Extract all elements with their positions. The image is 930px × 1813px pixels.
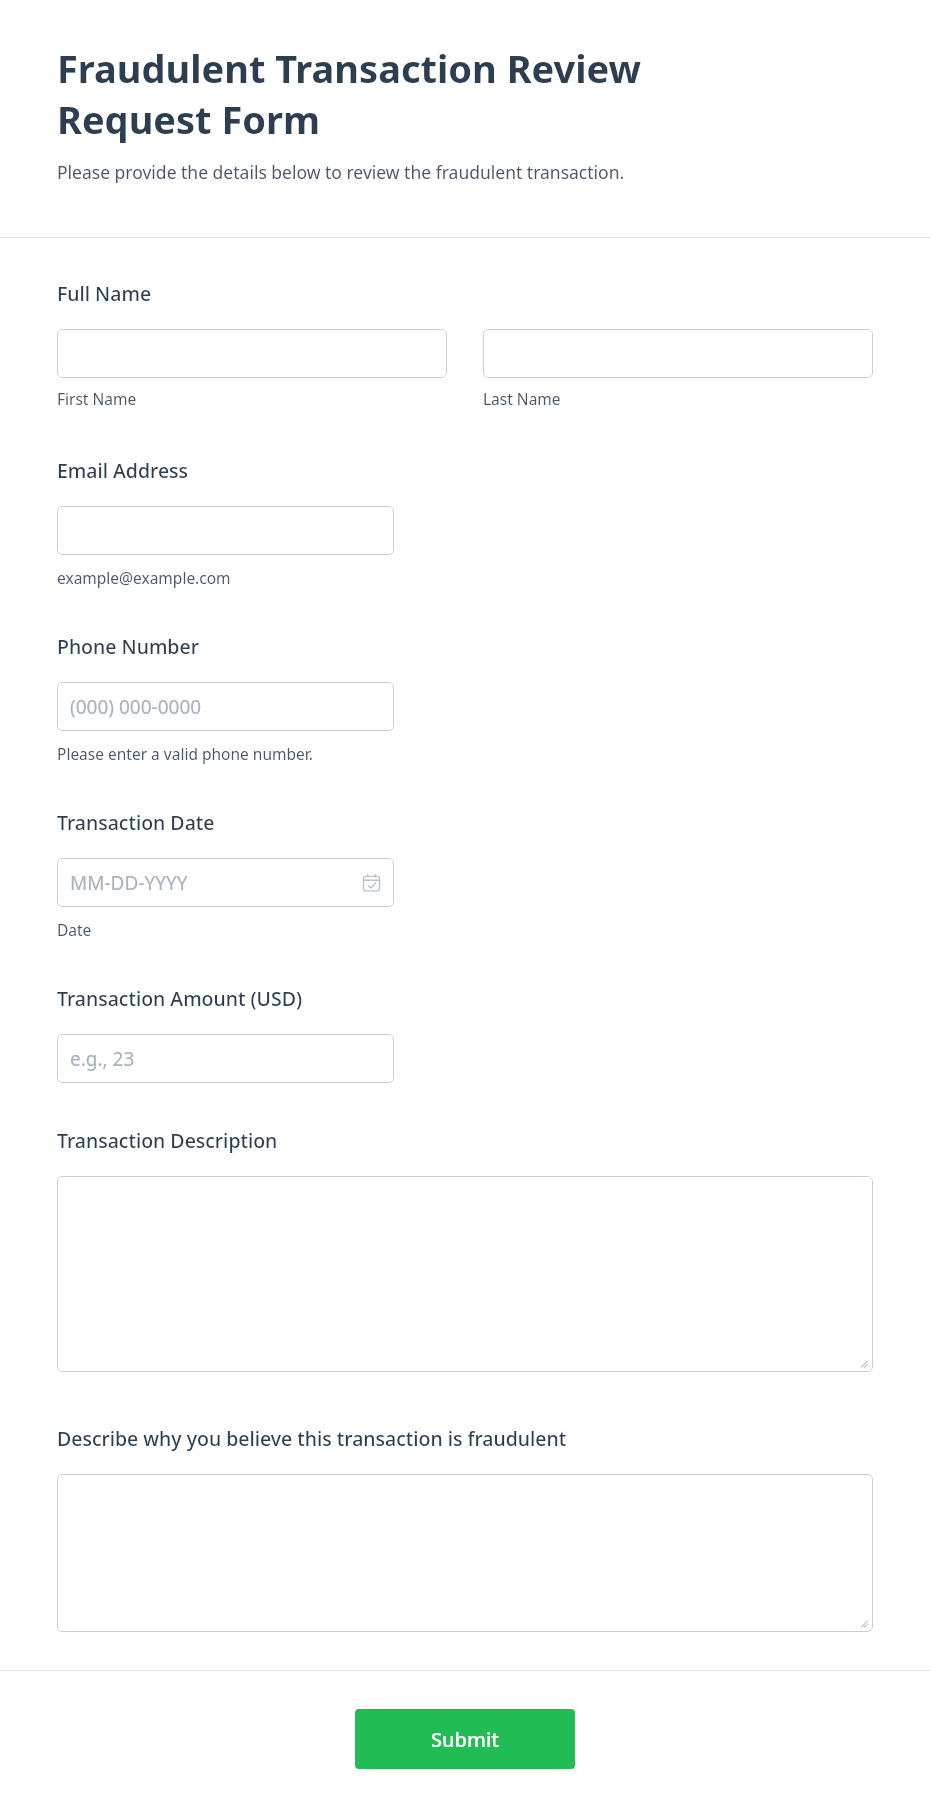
staticText: Phone Number xyxy=(57,633,199,660)
staticText: Describe why you believe this transactio… xyxy=(57,1425,567,1452)
button[interactable]: Reason field xyxy=(57,1474,873,1632)
staticText: Email Address xyxy=(57,457,189,484)
button[interactable]: Submit xyxy=(355,1709,575,1769)
staticText: MM-DD-YYYY xyxy=(70,870,188,896)
button[interactable]: Transaction Description xyxy=(57,1176,873,1372)
staticText: example@example.com xyxy=(57,567,231,588)
staticText: Date xyxy=(57,919,92,940)
button[interactable]: Transaction Amount xyxy=(57,1034,394,1083)
staticText: Submit xyxy=(431,1726,499,1753)
button[interactable]: Last Name xyxy=(483,329,873,378)
button[interactable]: Transaction Date xyxy=(57,858,394,907)
staticText: Transaction Description xyxy=(57,1127,278,1154)
button[interactable]: First Name xyxy=(57,329,447,378)
staticText: First Name xyxy=(57,388,137,409)
button[interactable]: Email Address xyxy=(57,506,394,555)
staticText: Full Name xyxy=(57,280,152,307)
staticText: Fraudulent Transaction Review Request Fo… xyxy=(57,42,730,145)
staticText: Please provide the details below to revi… xyxy=(57,160,625,184)
staticText: (000) 000-0000 xyxy=(70,694,202,720)
staticText: Last Name xyxy=(483,388,561,409)
staticText: Please enter a valid phone number. xyxy=(57,743,313,764)
staticText: Transaction Date xyxy=(57,809,215,836)
button[interactable]: Phone Number xyxy=(57,682,394,731)
staticText: Transaction Amount (USD) xyxy=(57,985,303,1012)
staticText: e.g., 23 xyxy=(70,1046,135,1072)
